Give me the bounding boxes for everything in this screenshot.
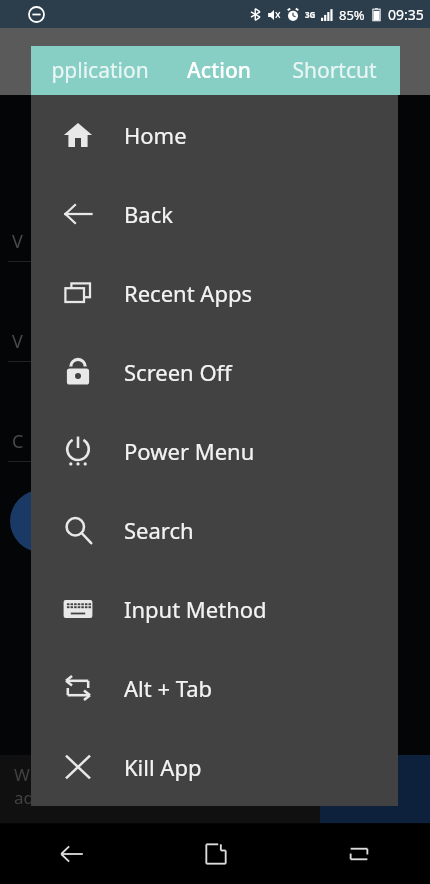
staticText: Alt + Tab (124, 673, 213, 703)
staticText: 85% (339, 6, 365, 24)
button[interactable]: Back (31, 174, 398, 253)
staticText: V (12, 329, 23, 354)
staticText: Home (124, 120, 187, 150)
staticText: Recent Apps (124, 278, 252, 308)
staticText: Action (187, 56, 251, 85)
staticText: 3G (305, 9, 316, 20)
staticText: pplication (51, 56, 149, 85)
button[interactable]: pplication (31, 46, 169, 95)
staticText: 09:35 (388, 5, 424, 24)
staticText: V (12, 229, 23, 254)
staticText: Search (124, 515, 194, 545)
button[interactable]: Screen Off (31, 332, 398, 411)
staticText: C (12, 429, 24, 454)
button[interactable]: Recent Apps (31, 253, 398, 332)
button[interactable]: Recent apps (287, 824, 430, 884)
button[interactable]: Shortcut (269, 46, 400, 95)
button[interactable]: Back (0, 824, 144, 884)
button[interactable]: Input Method (31, 569, 398, 648)
staticText: Input Method (124, 594, 267, 624)
button[interactable]: Search (31, 490, 398, 569)
staticText: Power Menu (124, 436, 255, 466)
staticText: Kill App (124, 752, 202, 782)
button[interactable]: Power Menu (31, 411, 398, 490)
staticText: W (14, 763, 30, 786)
button[interactable]: Alt + Tab (31, 648, 398, 727)
button[interactable]: Home (144, 824, 287, 884)
button[interactable]: Home (31, 95, 398, 174)
button[interactable]: Action (169, 46, 269, 95)
button[interactable]: Kill App (31, 727, 398, 806)
staticText: Shortcut (292, 56, 377, 85)
staticText: Screen Off (124, 357, 232, 387)
staticText: Back (124, 199, 173, 229)
staticText: ad-free version? (14, 786, 142, 809)
